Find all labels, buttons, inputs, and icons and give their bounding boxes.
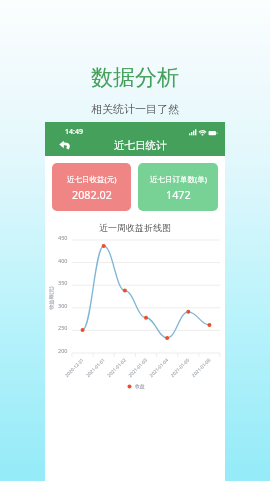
staticText: 450 <box>58 234 68 241</box>
staticText: 300 <box>58 302 68 309</box>
staticText: 收益 <box>135 383 145 389</box>
staticText: 1472 <box>166 187 191 202</box>
button[interactable]: Back <box>57 137 73 153</box>
staticText: 400 <box>58 257 68 264</box>
staticText: 近七日收益(元) <box>67 174 117 184</box>
staticText: 14:49 <box>65 127 83 137</box>
staticText: 2082.02 <box>72 187 112 202</box>
staticText: 近七日统计 <box>114 139 167 152</box>
staticText: 250 <box>58 324 68 331</box>
staticText: 200 <box>58 347 68 354</box>
button[interactable]: 近七日收益(元) <box>52 163 131 211</box>
staticText: 350 <box>58 279 68 286</box>
staticText: 相关统计一目了然 <box>91 102 179 116</box>
staticText: 数据分析 <box>91 64 179 92</box>
staticText: 收益额(元) <box>47 285 54 309</box>
button[interactable]: 近七日订单数(单) <box>138 163 218 211</box>
staticText: 近一周收益折线图 <box>45 222 225 233</box>
staticText: 近七日订单数(单) <box>150 174 207 184</box>
